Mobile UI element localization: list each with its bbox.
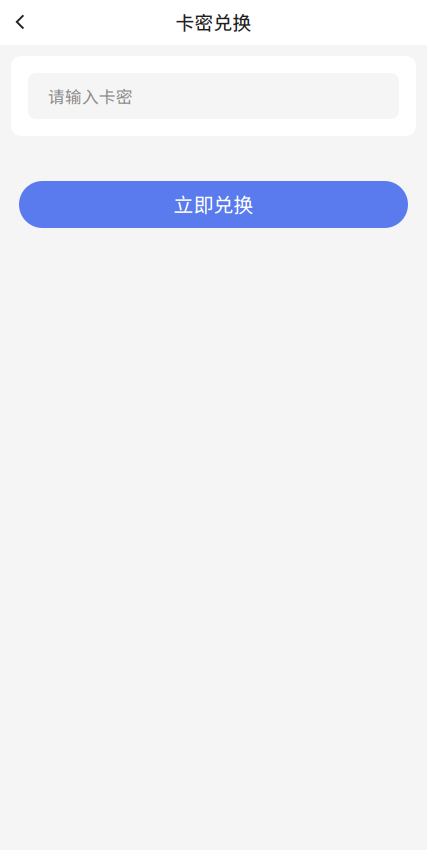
- button[interactable]: 请输入卡密: [28, 73, 399, 119]
- button[interactable]: Back: [0, 0, 39, 45]
- staticText: 立即兑换: [173, 189, 253, 218]
- button[interactable]: 立即兑换: [19, 181, 408, 228]
- staticText: 请输入卡密: [48, 84, 133, 108]
- staticText: 卡密兑换: [175, 8, 251, 35]
